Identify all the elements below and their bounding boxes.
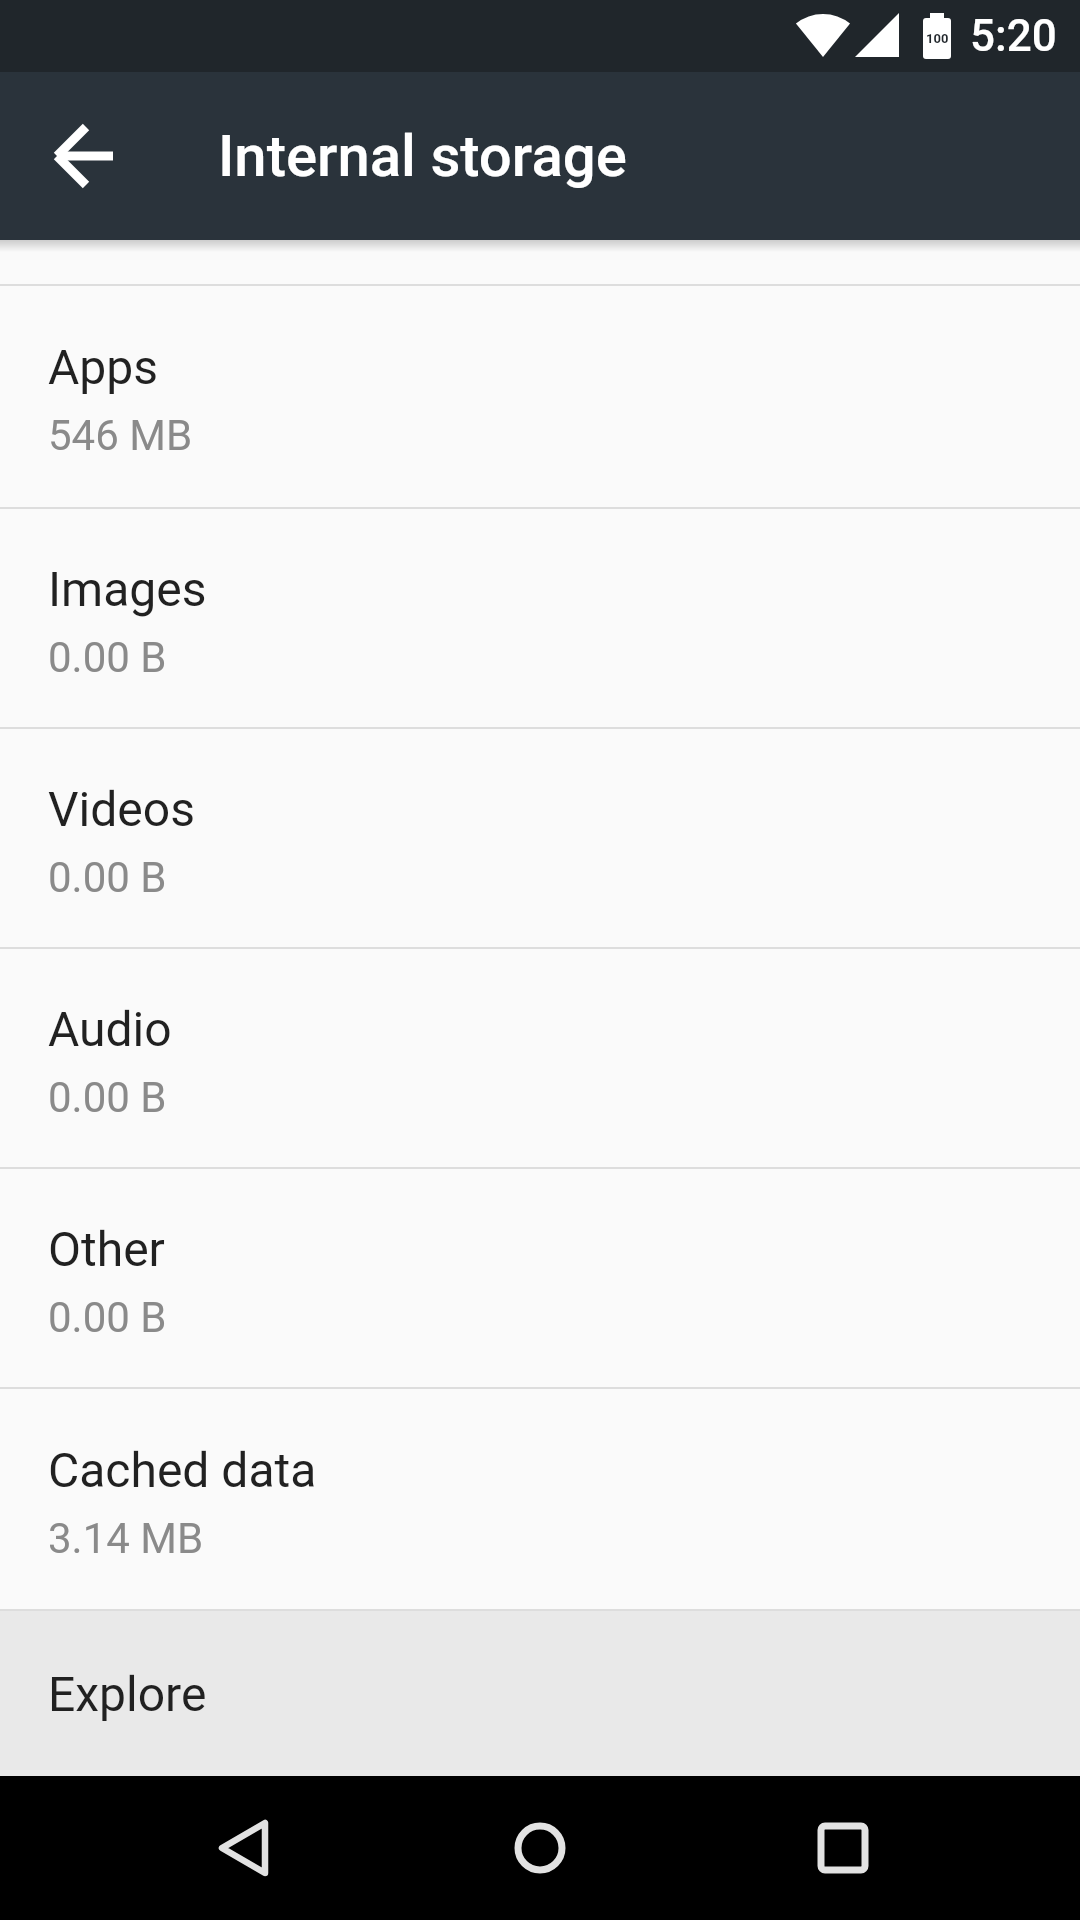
button[interactable]: Explore	[0, 1611, 1080, 1776]
button[interactable]	[55, 126, 115, 186]
staticText: Explore	[48, 1666, 207, 1722]
staticText: 0.00 B	[48, 633, 167, 682]
staticText: 0.00 B	[48, 853, 167, 902]
staticText: Cached data	[48, 1442, 317, 1498]
staticText: 5:20	[970, 10, 1057, 62]
button[interactable]	[215, 1820, 271, 1876]
staticText: 3.14 MB	[48, 1514, 204, 1563]
button[interactable]: Other	[0, 1169, 1080, 1387]
staticText: 546 MB	[48, 411, 193, 460]
button[interactable]: Apps	[0, 286, 1080, 507]
staticText: 0.00 B	[48, 1293, 167, 1342]
button[interactable]	[512, 1820, 568, 1876]
staticText: Internal storage	[218, 122, 627, 190]
staticText: Other	[48, 1221, 165, 1277]
button[interactable]: Images	[0, 509, 1080, 727]
staticText: 100	[926, 31, 949, 46]
staticText: Videos	[48, 781, 195, 837]
staticText: Apps	[48, 339, 158, 395]
staticText: Audio	[48, 1001, 172, 1057]
button[interactable]: Audio	[0, 949, 1080, 1167]
staticText: 0.00 B	[48, 1073, 167, 1122]
button[interactable]: Cached data	[0, 1389, 1080, 1609]
button[interactable]	[815, 1820, 871, 1876]
staticText: Images	[48, 561, 207, 617]
button[interactable]: Videos	[0, 729, 1080, 947]
